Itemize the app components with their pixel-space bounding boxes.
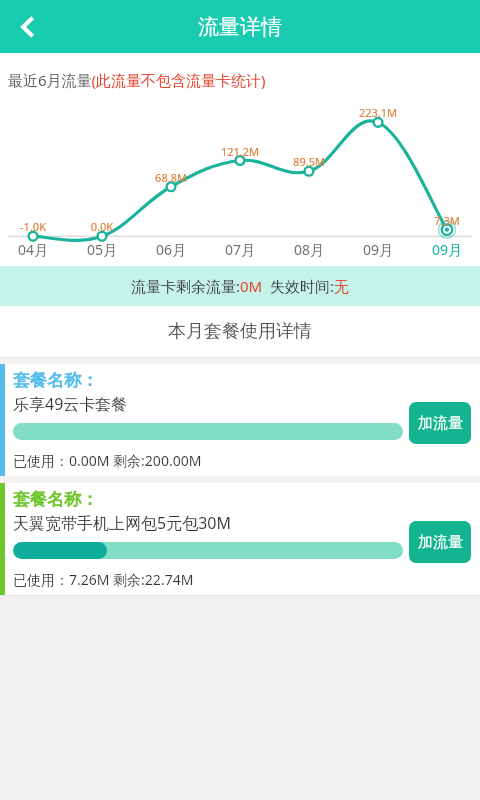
staticText: 天翼宽带手机上网包5元包30M [13, 512, 231, 534]
staticText: 223.1M [356, 105, 400, 120]
staticText: 04月 [11, 240, 55, 259]
staticText: 0.0K [80, 219, 124, 234]
staticText: 09月 [425, 240, 469, 259]
staticText: 本月套餐使用详情 [168, 320, 312, 343]
staticText: 68.8M [149, 170, 193, 185]
staticText: 09月 [356, 240, 400, 259]
button[interactable]: 套餐名称： [0, 483, 480, 595]
staticText: 已使用：0.00M 剩余:200.00M [13, 451, 202, 470]
staticText: 套餐名称： [13, 489, 98, 510]
staticText: 06月 [149, 240, 193, 259]
staticText: 加流量 [418, 533, 463, 552]
staticText: 乐享49云卡套餐 [13, 393, 128, 415]
staticText: -1.0K [11, 219, 55, 234]
staticText: 05月 [80, 240, 124, 259]
staticText: 已使用：7.26M 剩余:22.74M [13, 570, 194, 589]
staticText: 89.5M [287, 154, 331, 169]
button[interactable]: 加流量 [409, 521, 471, 563]
button[interactable]: 加流量 [409, 402, 471, 444]
button[interactable]: 套餐名称： [0, 364, 480, 476]
staticText: 最近6月流量(此流量不包含流量卡统计) [8, 70, 266, 90]
staticText: 流量详情 [198, 14, 282, 40]
staticText: 流量卡剩余流量:0M 失效时间:无 [131, 276, 350, 296]
staticText: 07月 [218, 240, 262, 259]
staticText: 加流量 [418, 414, 463, 433]
staticText: 08月 [287, 240, 331, 259]
staticText: 121.2M [218, 144, 262, 159]
staticText: 7.3M [425, 213, 469, 228]
staticText: 套餐名称： [13, 370, 98, 391]
button[interactable]: Back [0, 0, 56, 53]
